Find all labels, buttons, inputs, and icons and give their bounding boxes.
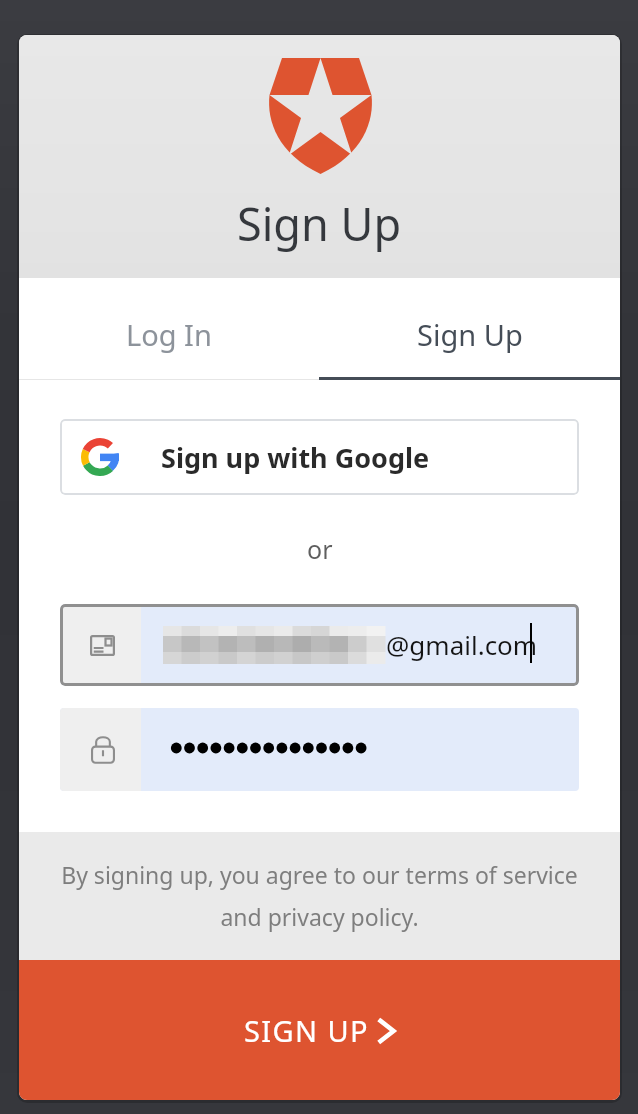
staticText: Sign Up [237,193,402,253]
staticText: or [307,532,333,564]
button[interactable]: Sign up [19,960,620,1100]
staticText: @gmail.com [386,627,538,662]
button[interactable]: Email address [60,604,579,686]
staticText: By signing up, you agree to our terms of… [61,859,578,933]
staticText: Log In [126,315,212,354]
staticText: Sign up with Google [161,439,430,476]
button[interactable]: Password [60,708,579,791]
staticText: SIGN UP [244,1011,369,1050]
staticText: Sign Up [417,315,523,354]
button[interactable]: Sign Up [319,278,620,380]
button[interactable]: Sign up with Google [60,419,579,495]
button[interactable]: Log In [19,278,319,380]
